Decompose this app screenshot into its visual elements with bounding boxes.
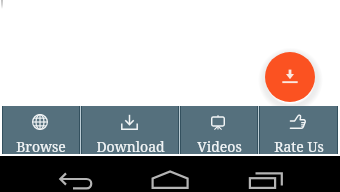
button[interactable]: Download [265, 52, 315, 102]
button[interactable]: Videos [181, 106, 257, 154]
button[interactable]: Rate Us [260, 106, 337, 154]
staticText: Videos [197, 137, 242, 154]
button[interactable]: Download [82, 106, 178, 154]
button[interactable]: Browse [3, 106, 79, 154]
staticText: Rate Us [274, 137, 324, 154]
staticText: Download [96, 137, 165, 154]
staticText: Browse [16, 137, 66, 154]
